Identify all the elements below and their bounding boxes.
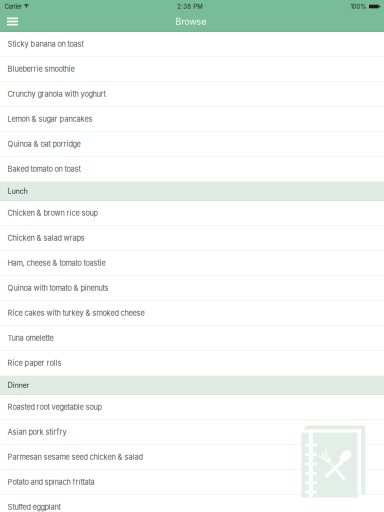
staticText: Lunch [7, 187, 27, 195]
staticText: Potato and spinach frittata [7, 478, 94, 487]
button[interactable]: Rice paper rolls [0, 351, 384, 376]
button[interactable]: Menu [1, 12, 23, 31]
button[interactable]: Rice cakes with turkey & smoked cheese [0, 301, 384, 326]
button[interactable]: Blueberrie smoothie [0, 57, 384, 82]
staticText: Browse [175, 16, 206, 27]
button[interactable]: Asian pork stirfry [0, 420, 384, 445]
staticText: Baked tomato on toast [7, 165, 80, 174]
staticText: Tuna omelette [7, 334, 53, 343]
staticText: Rice cakes with turkey & smoked cheese [7, 309, 144, 318]
button[interactable]: Chicken & salad wraps [0, 226, 384, 251]
staticText: Quinoa with tomato & pinenuts [7, 284, 108, 293]
staticText: Quinoa & oat porridge [7, 140, 80, 149]
staticText: 100% [350, 3, 366, 10]
staticText: Rice paper rolls [7, 359, 61, 368]
button[interactable]: Parmesan sesame seed chicken & salad [0, 445, 384, 470]
staticText: Lemon & sugar pancakes [7, 115, 92, 124]
staticText: Blueberrie smoothie [7, 65, 74, 74]
button[interactable]: Ham, cheese & tomato toastie [0, 251, 384, 276]
button[interactable]: Tuna omelette [0, 326, 384, 351]
button[interactable]: Sticky banana on toast [0, 32, 384, 57]
button[interactable]: Crunchy granola with yoghurt [0, 82, 384, 107]
button[interactable]: Potato and spinach frittata [0, 470, 384, 495]
staticText: Stuffed eggplant [7, 503, 60, 512]
staticText: Ham, cheese & tomato toastie [7, 259, 105, 268]
button[interactable]: Lemon & sugar pancakes [0, 107, 384, 132]
button[interactable]: Chicken & brown rice soup [0, 201, 384, 226]
staticText: Parmesan sesame seed chicken & salad [7, 453, 142, 462]
staticText: Asian pork stirfry [7, 428, 66, 437]
staticText: Carrier [4, 3, 21, 10]
staticText: Crunchy granola with yoghurt [7, 90, 105, 99]
button[interactable]: Stuffed eggplant [0, 495, 384, 512]
staticText: Roasted root vegetable soup [7, 403, 101, 412]
button[interactable]: Roasted root vegetable soup [0, 395, 384, 420]
staticText: 2:38 PM [177, 3, 202, 10]
staticText: Chicken & brown rice soup [7, 209, 97, 218]
button[interactable]: Baked tomato on toast [0, 157, 384, 182]
staticText: Dinner [7, 381, 29, 389]
button[interactable]: Quinoa & oat porridge [0, 132, 384, 157]
staticText: Sticky banana on toast [7, 40, 83, 49]
button[interactable]: Quinoa with tomato & pinenuts [0, 276, 384, 301]
staticText: Chicken & salad wraps [7, 234, 84, 243]
